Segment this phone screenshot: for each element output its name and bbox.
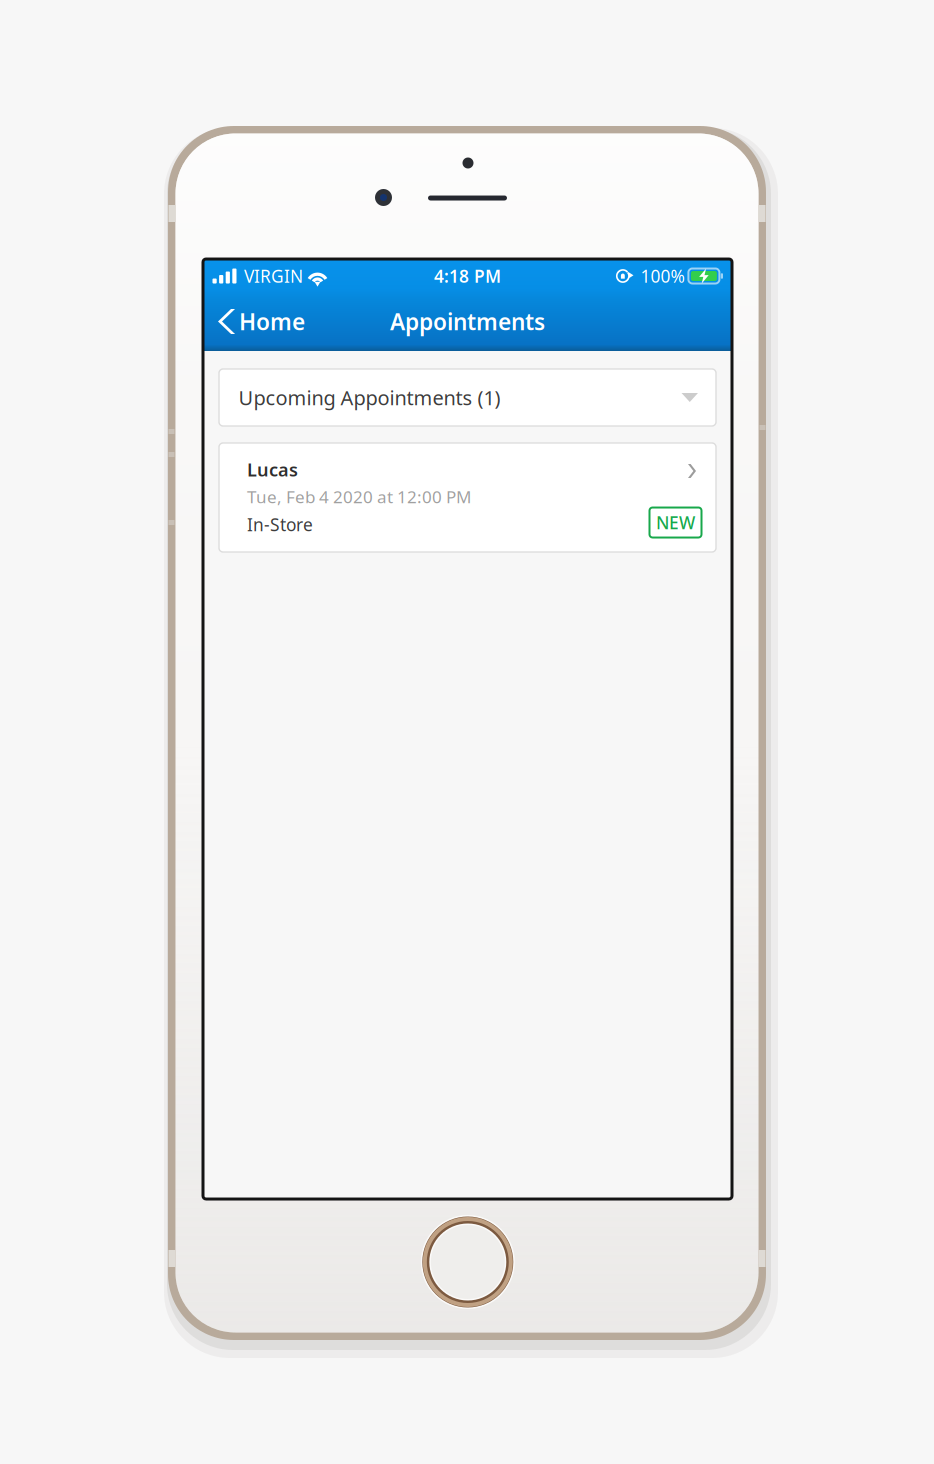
button[interactable]: Home xyxy=(420,1214,516,1310)
staticText: Upcoming Appointments (1) xyxy=(238,384,500,411)
staticText: VIRGIN xyxy=(244,264,303,287)
button[interactable]: Lucas xyxy=(219,443,716,552)
staticText: 100% xyxy=(640,264,684,287)
staticText: Home xyxy=(239,306,305,336)
button[interactable]: Upcoming Appointments (1) xyxy=(219,369,716,426)
staticText: NEW xyxy=(656,511,695,534)
staticText: Tue, Feb 4 2020 at 12:00 PM xyxy=(247,485,471,508)
staticText: Lucas xyxy=(247,457,298,482)
staticText: In-Store xyxy=(247,513,313,536)
button[interactable]: Home xyxy=(203,297,319,351)
staticText: Appointments xyxy=(390,306,545,336)
staticText: 4:18 PM xyxy=(434,264,501,287)
